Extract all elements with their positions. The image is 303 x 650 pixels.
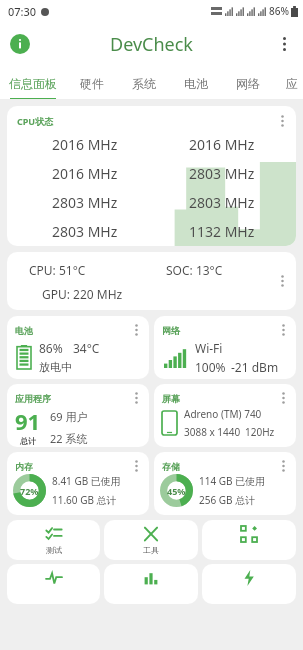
staticText: 2016 MHz [52, 164, 118, 183]
staticText: 1132 MHz [189, 222, 255, 241]
staticText: 100% [195, 359, 226, 375]
button[interactable]: 应 [274, 66, 303, 100]
button[interactable]: 硬件 [66, 66, 118, 100]
button[interactable]: 网络 [154, 316, 296, 379]
staticText: 07:30 [8, 4, 37, 19]
button[interactable] [7, 564, 100, 604]
staticText: 45% [167, 485, 186, 497]
button[interactable]: 电池 [170, 66, 222, 100]
button[interactable]: More options [7, 252, 296, 310]
staticText: Adreno (TM) 740 [184, 407, 262, 421]
staticText: 2016 MHz [52, 135, 118, 154]
staticText: -21 dBm [231, 359, 279, 375]
button[interactable]: 内存 [7, 452, 149, 515]
staticText: SOC: 13°C [166, 262, 223, 278]
button[interactable]: More options [275, 35, 293, 53]
staticText: 放电中 [39, 360, 72, 374]
button[interactable]: App info [10, 34, 30, 54]
button[interactable] [104, 564, 198, 604]
staticText: DevCheck [110, 32, 193, 57]
staticText: 屏幕 [162, 393, 180, 404]
button[interactable]: More options [276, 323, 290, 337]
staticText: CPU状态 [17, 115, 54, 127]
button[interactable]: 工具 [104, 520, 198, 560]
staticText: 应 [286, 76, 298, 91]
staticText: CPU: 51°C [29, 262, 86, 278]
staticText: 系统 [132, 76, 156, 91]
staticText: 硬件 [80, 76, 104, 91]
staticText: 72% [20, 485, 39, 497]
button[interactable] [202, 564, 296, 604]
button[interactable]: CPU状态 [7, 106, 296, 246]
button[interactable]: More options [129, 459, 143, 473]
staticText: GPU: 220 MHz [42, 286, 123, 302]
button[interactable]: 存储 [154, 452, 296, 515]
staticText: 91 [15, 406, 41, 436]
staticText: 11.60 GB 总计 [52, 493, 117, 507]
staticText: 2016 MHz [189, 135, 255, 154]
button[interactable]: More options [275, 274, 289, 288]
staticText: 测试 [46, 545, 62, 555]
button[interactable]: 信息面板 [0, 66, 66, 100]
button[interactable]: More options [276, 391, 290, 405]
staticText: 86% [269, 4, 289, 18]
staticText: 8.41 GB 已使用 [52, 474, 121, 488]
staticText: 3088 x 1440 [184, 425, 241, 439]
staticText: 69 用户 [50, 409, 88, 424]
button[interactable]: More options [276, 459, 290, 473]
staticText: 电池 [15, 325, 33, 336]
staticText: 86% [39, 340, 63, 356]
staticText: 114 GB 已使用 [199, 474, 266, 488]
button[interactable]: More options [275, 114, 289, 128]
button[interactable] [202, 520, 296, 560]
staticText: 120Hz [245, 425, 275, 439]
button[interactable]: 屏幕 [154, 384, 296, 447]
button[interactable]: More options [129, 323, 143, 337]
staticText: 内存 [15, 461, 33, 472]
staticText: 电池 [184, 76, 208, 91]
staticText: 256 GB 总计 [199, 493, 256, 507]
staticText: 2803 MHz [52, 193, 118, 212]
staticText: 应用程序 [15, 393, 51, 404]
staticText: 信息面板 [9, 76, 57, 91]
staticText: 22 系统 [50, 431, 88, 446]
staticText: 34°C [73, 340, 100, 356]
button[interactable]: 系统 [118, 66, 170, 100]
staticText: 2803 MHz [52, 222, 118, 241]
staticText: 2803 MHz [189, 164, 255, 183]
staticText: 2803 MHz [189, 193, 255, 212]
staticText: 总计 [20, 436, 36, 446]
staticText: Wi-Fi [195, 340, 223, 356]
staticText: 网络 [162, 325, 180, 336]
staticText: 存储 [162, 461, 180, 472]
button[interactable]: More options [129, 391, 143, 405]
button[interactable]: 网络 [222, 66, 274, 100]
staticText: 网络 [236, 76, 260, 91]
staticText: 工具 [143, 545, 159, 555]
button[interactable]: 应用程序 [7, 384, 149, 447]
button[interactable]: 电池 [7, 316, 149, 379]
button[interactable]: 测试 [7, 520, 100, 560]
